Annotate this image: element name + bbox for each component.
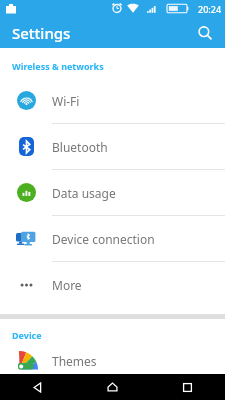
staticText: Bluetooth (52, 139, 108, 155)
button[interactable]: Home (75, 374, 150, 400)
staticText: 20:24 (198, 3, 222, 15)
button[interactable]: Data usage (0, 170, 225, 215)
button[interactable]: Bluetooth (0, 124, 225, 169)
staticText: Themes (52, 353, 97, 369)
button[interactable]: Themes (0, 347, 225, 374)
button[interactable]: Back (0, 374, 75, 400)
staticText: Wireless & networks (12, 60, 104, 72)
staticText: Settings (12, 23, 71, 43)
button[interactable]: More (0, 262, 225, 307)
staticText: Device (12, 329, 42, 341)
staticText: Device connection (52, 231, 155, 247)
button[interactable]: Wi-Fi (0, 78, 225, 123)
button[interactable]: Recents (150, 374, 225, 400)
staticText: More (52, 277, 82, 293)
staticText: Wi-Fi (52, 93, 80, 109)
button[interactable]: Search (191, 19, 219, 47)
staticText: Data usage (52, 185, 116, 201)
button[interactable]: Device connection (0, 216, 225, 261)
